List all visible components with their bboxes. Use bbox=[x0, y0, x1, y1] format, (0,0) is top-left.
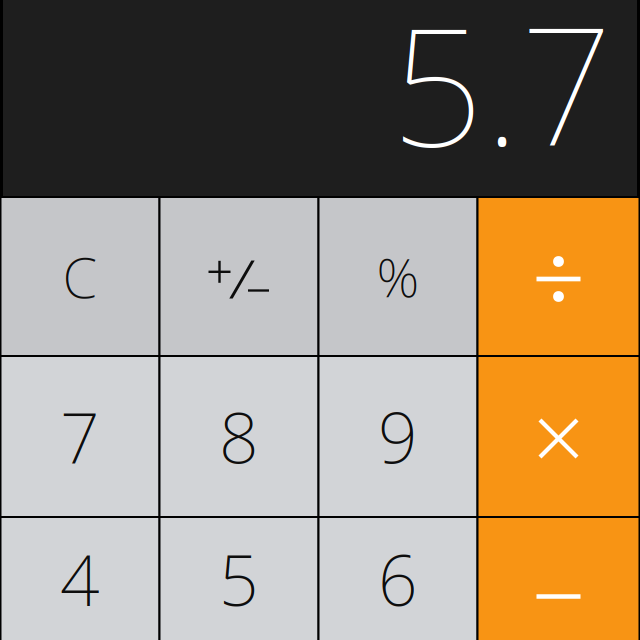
staticText: 8 bbox=[219, 390, 259, 483]
button[interactable]: C bbox=[1, 198, 158, 355]
button[interactable]: % bbox=[319, 198, 476, 355]
button[interactable]: 7 bbox=[1, 357, 158, 516]
staticText: C bbox=[62, 239, 97, 314]
staticText: 5.7 bbox=[391, 0, 613, 191]
staticText: % bbox=[376, 241, 419, 312]
button[interactable]: Subtract bbox=[478, 518, 638, 640]
button[interactable]: Multiply bbox=[478, 357, 638, 516]
staticText: 5 bbox=[219, 533, 259, 625]
staticText: 4 bbox=[60, 533, 100, 625]
button[interactable]: 6 bbox=[319, 518, 476, 640]
button[interactable]: 8 bbox=[160, 357, 317, 516]
button[interactable]: 4 bbox=[1, 518, 158, 640]
staticText: 9 bbox=[378, 390, 418, 483]
button[interactable]: Divide bbox=[478, 198, 638, 355]
button[interactable]: Plus Minus bbox=[160, 198, 317, 355]
button[interactable]: 5 bbox=[160, 518, 317, 640]
staticText: 6 bbox=[378, 533, 418, 625]
button[interactable]: 9 bbox=[319, 357, 476, 516]
staticText: 7 bbox=[60, 390, 100, 483]
